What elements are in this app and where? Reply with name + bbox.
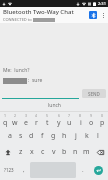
- staticText: w: [12, 118, 18, 128]
- button[interactable]: 5: [42, 112, 53, 128]
- staticText: o: [89, 118, 94, 128]
- button[interactable]: ?123: [0, 160, 18, 180]
- staticText: g: [51, 131, 56, 141]
- button[interactable]: More options: [100, 9, 106, 21]
- staticText: 2:31: [98, 1, 106, 6]
- button[interactable]: 7: [64, 112, 75, 128]
- staticText: ,: [23, 166, 25, 174]
- staticText: CONNECTED to: [3, 17, 33, 22]
- staticText: 1: [4, 113, 7, 118]
- button[interactable]: b: [59, 144, 70, 160]
- staticText: 7: [68, 113, 71, 118]
- staticText: b: [62, 147, 67, 157]
- button[interactable]: .: [77, 160, 88, 180]
- staticText: r: [35, 118, 38, 128]
- staticText: 2: [14, 113, 17, 118]
- button[interactable]: k: [81, 128, 92, 144]
- button[interactable]: l: [92, 128, 103, 144]
- staticText: Bluetooth Two-Way Chat: [3, 8, 74, 16]
- staticText: SEND: [88, 91, 100, 97]
- button[interactable]: j: [70, 128, 81, 144]
- staticText: x: [30, 147, 34, 157]
- staticText: 5: [46, 113, 49, 118]
- button[interactable]: Shift: [0, 144, 15, 160]
- button[interactable]: a: [4, 128, 15, 144]
- button[interactable]: g: [48, 128, 59, 144]
- staticText: .: [82, 166, 84, 174]
- button[interactable]: 4: [31, 112, 42, 128]
- staticText: a: [8, 131, 12, 141]
- staticText: u: [67, 118, 72, 128]
- button[interactable]: 9: [86, 112, 97, 128]
- button[interactable]: n: [70, 144, 81, 160]
- staticText: 9: [90, 113, 93, 118]
- staticText: q: [3, 118, 8, 128]
- staticText: f: [41, 131, 44, 141]
- button[interactable]: lunch: [0, 100, 108, 111]
- button[interactable]: 1: [0, 112, 10, 128]
- button[interactable]: s: [15, 128, 26, 144]
- button[interactable]: h: [59, 128, 70, 144]
- staticText: l: [97, 131, 99, 141]
- staticText: h: [62, 131, 67, 141]
- button[interactable]: m: [81, 144, 92, 160]
- button[interactable]: Enter: [88, 160, 108, 180]
- staticText: Me: lunch?: [3, 67, 30, 74]
- button[interactable]: 2: [10, 112, 20, 128]
- staticText: d: [29, 131, 34, 141]
- staticText: p: [100, 118, 105, 128]
- staticText: m: [83, 147, 90, 157]
- button[interactable]: 8: [75, 112, 86, 128]
- staticText: : sure: [28, 77, 43, 84]
- button[interactable]: 0: [97, 112, 108, 128]
- staticText: s: [19, 131, 23, 141]
- button[interactable]: f: [37, 128, 48, 144]
- button[interactable]: Backspace: [92, 144, 108, 160]
- staticText: k: [85, 131, 89, 141]
- staticText: lunch: [48, 102, 61, 109]
- staticText: t: [46, 118, 49, 128]
- staticText: e: [24, 118, 28, 128]
- button[interactable]: c: [37, 144, 48, 160]
- staticText: 6: [58, 113, 61, 118]
- staticText: ?123: [4, 167, 14, 173]
- staticText: i: [80, 118, 82, 128]
- staticText: y: [57, 118, 61, 128]
- staticText: 4: [35, 113, 38, 118]
- staticText: c: [41, 147, 45, 157]
- button[interactable]: z: [15, 144, 26, 160]
- staticText: n: [73, 147, 78, 157]
- staticText: v: [52, 147, 56, 157]
- button[interactable]: x: [26, 144, 37, 160]
- button[interactable]: ,: [18, 160, 29, 180]
- button[interactable]: Bluetooth: [89, 11, 97, 19]
- button[interactable]: 6: [53, 112, 64, 128]
- button[interactable]: [2, 88, 79, 99]
- button[interactable]: d: [26, 128, 37, 144]
- staticText: z: [19, 147, 23, 157]
- staticText: 8: [79, 113, 82, 118]
- staticText: j: [75, 131, 77, 141]
- button[interactable]: v: [48, 144, 59, 160]
- staticText: 3: [25, 113, 28, 118]
- button[interactable]: SEND: [82, 89, 106, 98]
- button[interactable]: 3: [20, 112, 31, 128]
- staticText: 0: [101, 113, 104, 118]
